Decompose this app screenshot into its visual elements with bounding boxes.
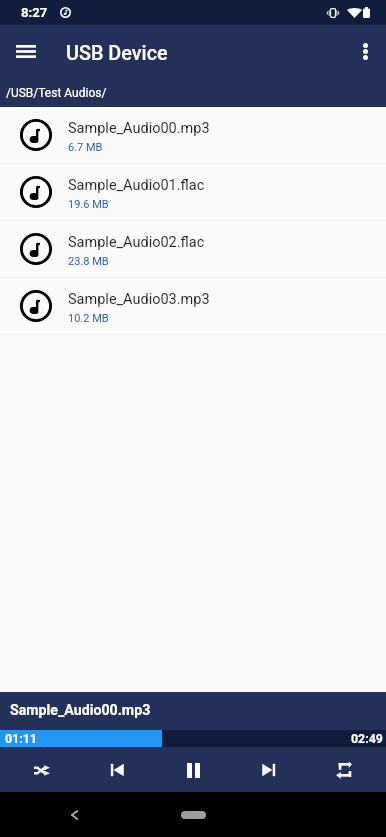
staticText: Sample_Audio03.mp3 [68, 291, 210, 308]
button[interactable]: Next track [247, 748, 291, 792]
staticText: 19.6 MB [68, 198, 109, 211]
staticText: Sample_Audio00.mp3 [68, 120, 210, 137]
button[interactable]: More options [350, 25, 380, 78]
button[interactable]: Sample_Audio02.flac [0, 221, 386, 277]
button[interactable]: Sample_Audio00.mp3 [0, 107, 386, 163]
button[interactable]: Repeat [322, 748, 366, 792]
button[interactable]: Sample_Audio01.flac [0, 164, 386, 220]
staticText: 01:11 [5, 731, 37, 746]
staticText: Sample_Audio00.mp3 [10, 702, 151, 719]
button[interactable]: Previous track [95, 748, 139, 792]
staticText: /USB/Test Audios/ [6, 86, 107, 100]
button[interactable]: Home [181, 811, 206, 819]
staticText: 10.2 MB [68, 312, 109, 325]
staticText: Sample_Audio01.flac [68, 177, 205, 194]
button[interactable]: Sample_Audio03.mp3 [0, 278, 386, 334]
staticText: 6.7 MB [68, 141, 103, 154]
button[interactable]: Pause [171, 748, 215, 792]
staticText: Sample_Audio02.flac [68, 234, 205, 251]
button[interactable]: Back [58, 799, 90, 831]
staticText: 23.8 MB [68, 255, 109, 268]
button[interactable]: Shuffle [20, 748, 64, 792]
staticText: 8:27 [21, 5, 48, 20]
staticText: USB Device [66, 42, 168, 65]
staticText: 02:49 [351, 731, 383, 746]
button[interactable]: Open navigation menu [16, 25, 36, 78]
